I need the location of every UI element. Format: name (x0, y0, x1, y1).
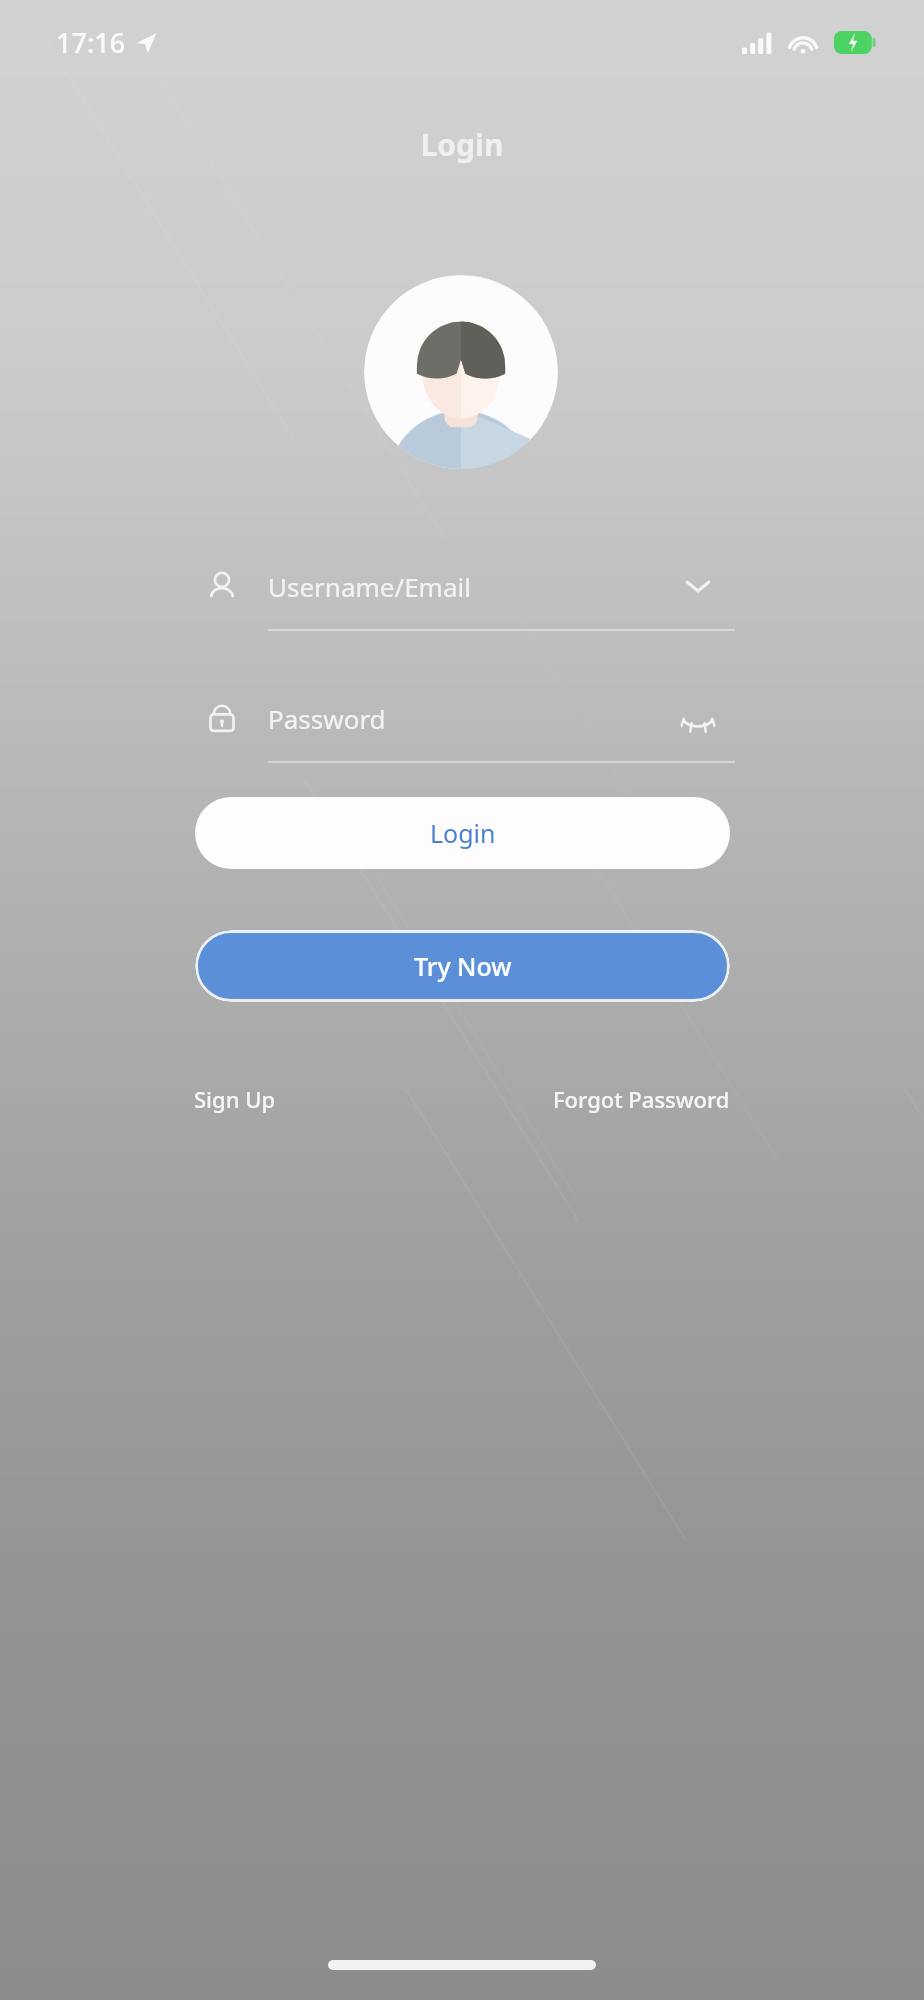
button[interactable]: Sign Up (192, 1078, 278, 1120)
staticText: Login (0, 124, 924, 165)
staticText: Forgot Password (553, 1084, 730, 1114)
button[interactable]: Forgot Password (551, 1078, 732, 1120)
button[interactable]: Profile photo (364, 275, 558, 469)
button[interactable]: Try Now (195, 930, 730, 1002)
button[interactable]: Show suggestions (679, 567, 717, 605)
button[interactable]: Username/Email (190, 541, 735, 631)
button[interactable]: Password (190, 673, 735, 763)
button[interactable]: Login (195, 797, 730, 869)
staticText: 17:16 (56, 24, 126, 61)
staticText: Try Now (414, 949, 512, 983)
staticText: Password (268, 701, 386, 736)
staticText: Sign Up (194, 1084, 276, 1114)
staticText: Login (430, 816, 496, 850)
staticText: Username/Email (268, 569, 471, 604)
button[interactable]: Show password (679, 699, 717, 737)
